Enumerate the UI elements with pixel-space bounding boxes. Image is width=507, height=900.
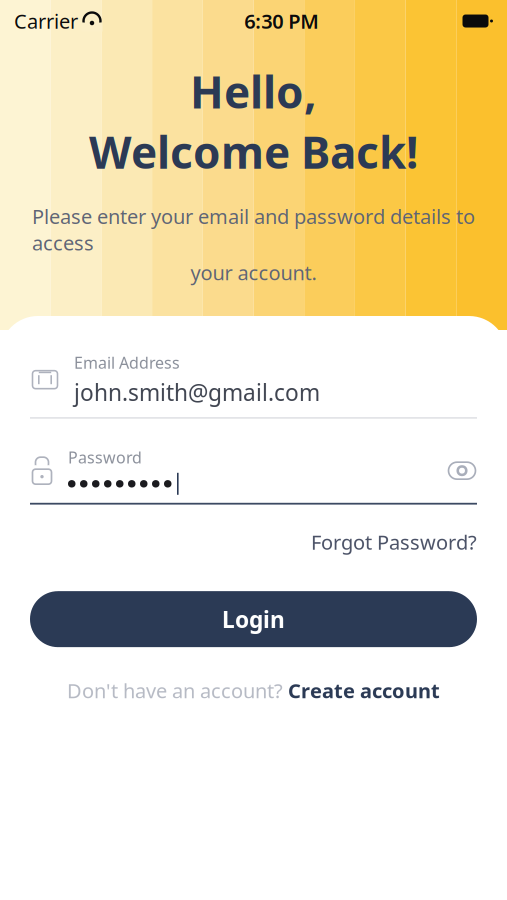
staticText: Hello, (190, 62, 317, 121)
staticText: Carrier (14, 8, 78, 34)
button[interactable]: Show password (437, 455, 477, 487)
staticText: Welcome Back! (89, 123, 418, 181)
staticText: Forgot Password? (311, 529, 477, 555)
button[interactable]: Don't have an account? (30, 669, 477, 712)
button[interactable]: Forgot Password? (311, 523, 477, 561)
staticText: Don't have an account? (67, 677, 283, 704)
staticText: your account. (190, 259, 316, 286)
staticText: Please enter your email and password det… (32, 203, 475, 256)
staticText: john.smith@gmail.com (74, 377, 320, 407)
staticText: Password (68, 446, 142, 468)
button[interactable]: Login (30, 591, 477, 647)
staticText: Create account (288, 677, 440, 704)
staticText: 6:30 PM (244, 8, 319, 34)
staticText: Email Address (74, 352, 180, 373)
staticText: Login (222, 604, 285, 634)
